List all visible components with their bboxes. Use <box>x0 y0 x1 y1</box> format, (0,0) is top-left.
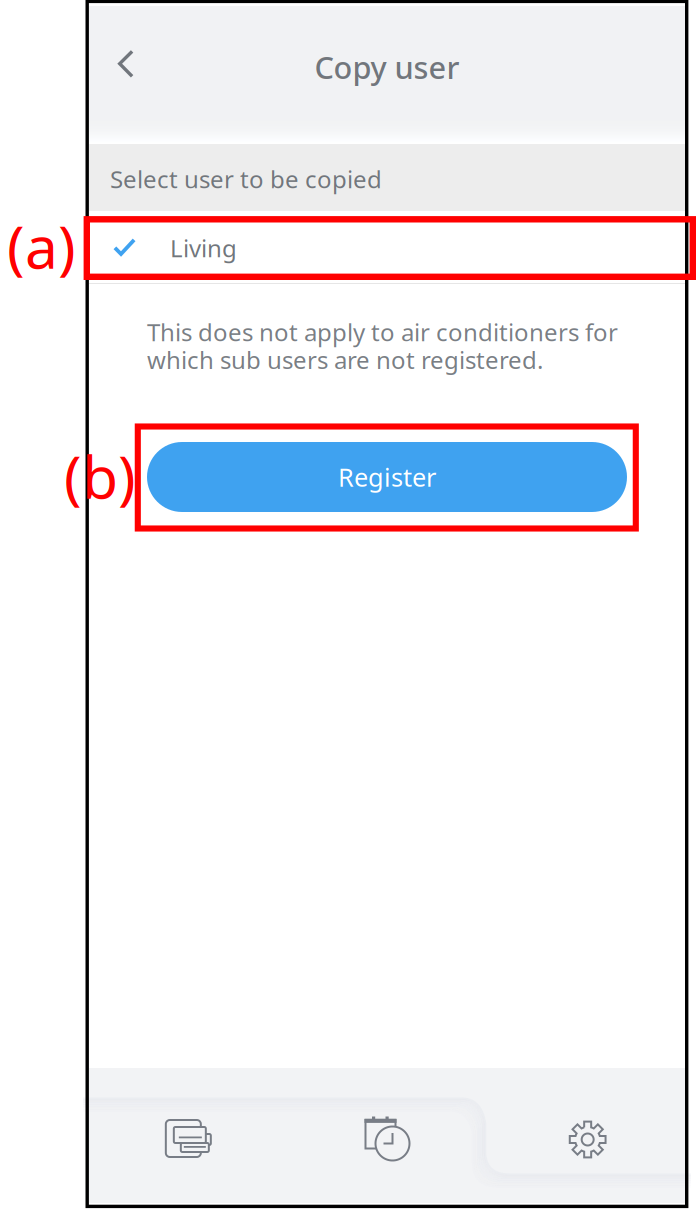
button[interactable]: Settings <box>486 1069 685 1204</box>
staticText: Copy user <box>314 47 459 87</box>
button[interactable]: Back <box>93 28 159 100</box>
button[interactable]: Register <box>147 442 627 512</box>
staticText: (b) <box>64 437 136 515</box>
button[interactable]: Devices <box>89 1069 288 1204</box>
staticText: Living <box>170 232 237 264</box>
button[interactable]: Schedule <box>288 1069 486 1204</box>
staticText: (a) <box>7 207 76 285</box>
button[interactable]: Living <box>89 211 685 282</box>
staticText: Select user to be copied <box>110 163 382 195</box>
staticText: which sub users are not registered. <box>147 344 543 376</box>
staticText: This does not apply to air conditioners … <box>147 316 618 348</box>
staticText: Register <box>338 460 436 494</box>
